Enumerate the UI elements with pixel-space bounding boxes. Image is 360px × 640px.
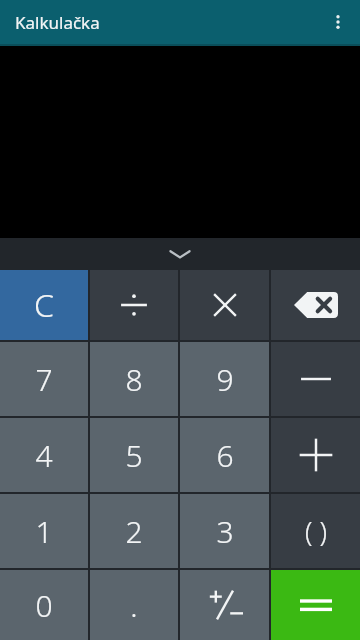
button[interactable]: 4 xyxy=(0,418,88,492)
button[interactable]: ( ) xyxy=(271,494,360,568)
button[interactable]: 9 xyxy=(180,342,269,416)
button[interactable]: 3 xyxy=(180,494,269,568)
staticText: ( ) xyxy=(305,513,327,550)
staticText: 5 xyxy=(125,435,143,476)
button[interactable]: C xyxy=(0,270,88,340)
staticText: Kalkulačka xyxy=(15,11,100,34)
staticText: 2 xyxy=(125,511,143,552)
staticText: C xyxy=(34,283,54,327)
button[interactable]: 2 xyxy=(90,494,178,568)
button[interactable] xyxy=(180,270,269,340)
button[interactable]: 0 xyxy=(0,570,88,640)
staticText: 0 xyxy=(35,585,53,626)
staticText: . xyxy=(130,585,138,626)
staticText: 6 xyxy=(216,435,234,476)
staticText: 7 xyxy=(35,359,53,400)
button[interactable]: 7 xyxy=(0,342,88,416)
button[interactable]: Minus xyxy=(271,342,360,416)
staticText: 8 xyxy=(125,359,143,400)
staticText: 1 xyxy=(35,511,53,552)
button[interactable]: Backspace xyxy=(271,270,360,340)
staticText: 3 xyxy=(216,511,234,552)
button[interactable]: 8 xyxy=(90,342,178,416)
button[interactable]: 1 xyxy=(0,494,88,568)
staticText: 4 xyxy=(35,435,53,476)
button[interactable]: 6 xyxy=(180,418,269,492)
button[interactable]: Plus xyxy=(271,418,360,492)
button[interactable]: More options xyxy=(316,0,360,44)
button[interactable]: Equals xyxy=(271,570,360,640)
button[interactable]: . xyxy=(90,570,178,640)
staticText: 9 xyxy=(216,359,234,400)
button[interactable] xyxy=(180,570,269,640)
button[interactable]: Expand history xyxy=(0,238,360,270)
button[interactable]: 5 xyxy=(90,418,178,492)
button[interactable] xyxy=(90,270,178,340)
